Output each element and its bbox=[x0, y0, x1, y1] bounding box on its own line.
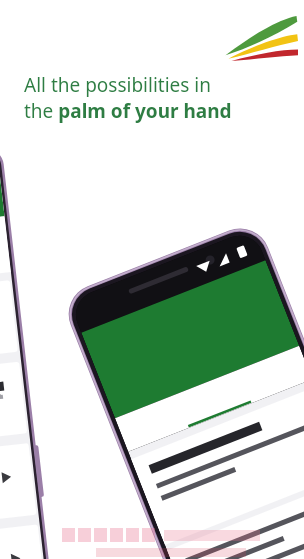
staticText: the palm of your hand bbox=[24, 98, 232, 124]
button[interactable]: Ethiopian Airlines logo bbox=[224, 14, 298, 62]
staticText: All the possibilities in bbox=[24, 72, 211, 98]
